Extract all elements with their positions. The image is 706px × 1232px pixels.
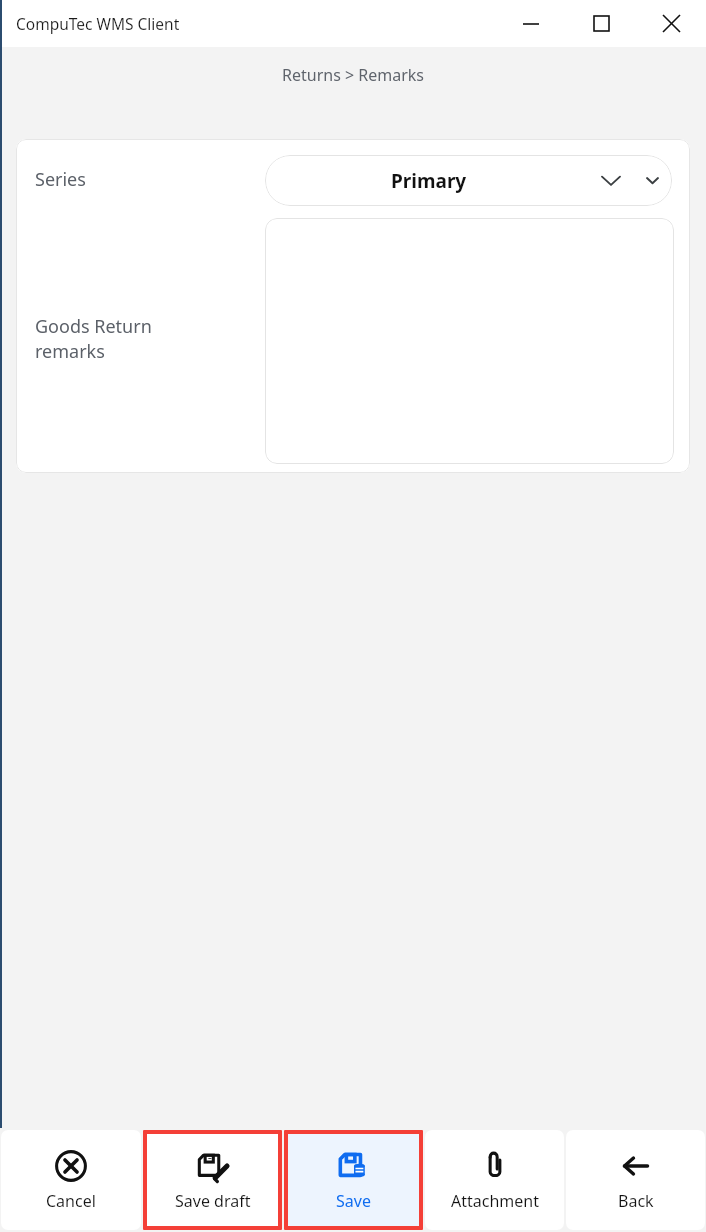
button[interactable]: Close — [636, 0, 706, 47]
button[interactable]: Save — [284, 1130, 423, 1230]
button[interactable]: Cancel — [1, 1130, 141, 1230]
staticText: Series — [35, 167, 86, 192]
button[interactable]: Maximize — [566, 0, 636, 47]
button[interactable]: Attachment — [425, 1130, 564, 1230]
staticText: Primary — [391, 168, 467, 194]
staticText: CompuTec WMS Client — [16, 13, 180, 34]
staticText: Cancel — [46, 1190, 96, 1212]
staticText: Back — [618, 1190, 654, 1212]
staticText: remarks — [35, 339, 105, 364]
button[interactable]: Save draft — [143, 1130, 282, 1230]
button[interactable]: Back — [566, 1130, 705, 1230]
staticText: Returns > Remarks — [0, 64, 706, 86]
staticText: Save — [336, 1190, 371, 1212]
staticText: Goods Return — [35, 314, 152, 339]
button[interactable]: Primary — [265, 155, 672, 206]
staticText: Save draft — [175, 1190, 251, 1212]
button[interactable]: Minimize — [496, 0, 566, 47]
staticText: Attachment — [451, 1190, 539, 1212]
